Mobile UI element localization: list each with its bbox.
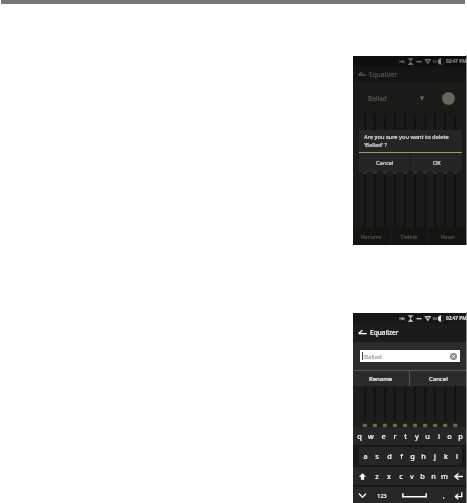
button[interactable]: [442, 92, 455, 105]
staticText: z: [375, 471, 379, 481]
button[interactable]: u: [422, 427, 433, 445]
button[interactable]: t: [400, 427, 411, 445]
staticText: OK: [433, 159, 441, 167]
button[interactable]: Backspace: [450, 467, 466, 485]
button[interactable]: Shift: [353, 467, 371, 485]
button[interactable]: ,: [437, 487, 451, 503]
staticText: Ballad: [364, 352, 382, 360]
button[interactable]: g: [407, 447, 418, 465]
staticText: k: [444, 451, 448, 461]
other: Back: [358, 328, 367, 337]
button[interactable]: Back: [353, 66, 466, 82]
staticText: Cancel: [376, 159, 394, 167]
other: Choose preset: [419, 95, 425, 101]
staticText: Ballad: [368, 94, 387, 103]
staticText: h: [421, 451, 426, 461]
button[interactable]: Back: [353, 323, 466, 342]
staticText: Rename: [361, 233, 382, 240]
staticText: o: [447, 431, 452, 441]
staticText: r: [393, 431, 397, 441]
button[interactable]: l: [451, 447, 462, 465]
staticText: c: [399, 471, 403, 481]
other: Clear text: [450, 353, 457, 360]
button[interactable]: w: [365, 427, 377, 445]
staticText: 02:47 PM: [446, 315, 467, 321]
staticText: e: [381, 431, 386, 441]
other: Back: [358, 70, 366, 78]
button[interactable]: Reset: [429, 227, 466, 245]
staticText: y: [415, 431, 419, 441]
other: Enter: [454, 491, 463, 500]
staticText: q: [357, 431, 362, 441]
staticText: 02:47 PM: [446, 58, 467, 64]
staticText: g: [410, 451, 415, 461]
button[interactable]: s: [371, 447, 383, 465]
button[interactable]: Hide keyboard: [353, 487, 371, 503]
other: Backspace: [454, 472, 463, 481]
button[interactable]: y: [411, 427, 422, 445]
staticText: f: [400, 451, 403, 461]
button[interactable]: h: [418, 447, 429, 465]
button[interactable]: f: [395, 447, 407, 465]
button[interactable]: e: [377, 427, 389, 445]
staticText: Equalizer: [370, 328, 399, 337]
staticText: 123: [377, 492, 387, 499]
staticText: Delete: [401, 233, 418, 240]
button[interactable]: Delete: [391, 227, 428, 245]
staticText: a: [363, 451, 368, 461]
button[interactable]: Space: [392, 487, 437, 503]
button[interactable]: Rename: [353, 227, 390, 245]
staticText: i: [438, 431, 440, 441]
button[interactable]: c: [395, 467, 406, 485]
button[interactable]: b: [417, 467, 428, 485]
staticText: d: [387, 451, 392, 461]
button[interactable]: o: [444, 427, 455, 445]
staticText: v: [410, 471, 414, 481]
staticText: s: [375, 451, 379, 461]
button[interactable]: Rename: [353, 371, 409, 386]
other: Space: [392, 491, 437, 500]
staticText: b: [420, 471, 425, 481]
staticText: l: [456, 451, 458, 461]
other: Hide keyboard: [358, 491, 367, 500]
staticText: n: [431, 471, 436, 481]
staticText: u: [425, 431, 430, 441]
button[interactable]: r: [389, 427, 400, 445]
staticText: j: [434, 451, 436, 461]
button[interactable]: Cancel: [359, 153, 410, 172]
button[interactable]: n: [428, 467, 439, 485]
staticText: Rename: [369, 375, 393, 383]
button[interactable]: z: [371, 467, 383, 485]
button[interactable]: Cancel: [410, 371, 466, 386]
staticText: Are you sure you want to delete 'Ballad'…: [364, 133, 449, 148]
button[interactable]: m: [439, 467, 450, 485]
button[interactable]: p: [455, 427, 466, 445]
staticText: Reset: [441, 233, 455, 240]
button[interactable]: i: [433, 427, 444, 445]
button[interactable]: OK: [411, 153, 462, 172]
button[interactable]: j: [429, 447, 440, 465]
button[interactable]: k: [440, 447, 451, 465]
button[interactable]: 123: [371, 487, 392, 503]
staticText: t: [404, 431, 407, 441]
button[interactable]: v: [406, 467, 417, 485]
staticText: Equalizer: [369, 70, 398, 79]
staticText: Cancel: [429, 375, 448, 383]
staticText: m: [441, 471, 448, 481]
button[interactable]: q: [353, 427, 365, 445]
button[interactable]: d: [383, 447, 395, 465]
button[interactable]: Enter: [451, 487, 466, 503]
staticText: ,: [443, 491, 445, 500]
button[interactable]: x: [383, 467, 395, 485]
button[interactable]: a: [359, 447, 371, 465]
other: Shift: [358, 472, 367, 481]
button[interactable]: Ballad: [360, 350, 460, 362]
staticText: w: [368, 431, 374, 441]
staticText: p: [458, 431, 463, 441]
staticText: x: [387, 471, 391, 481]
